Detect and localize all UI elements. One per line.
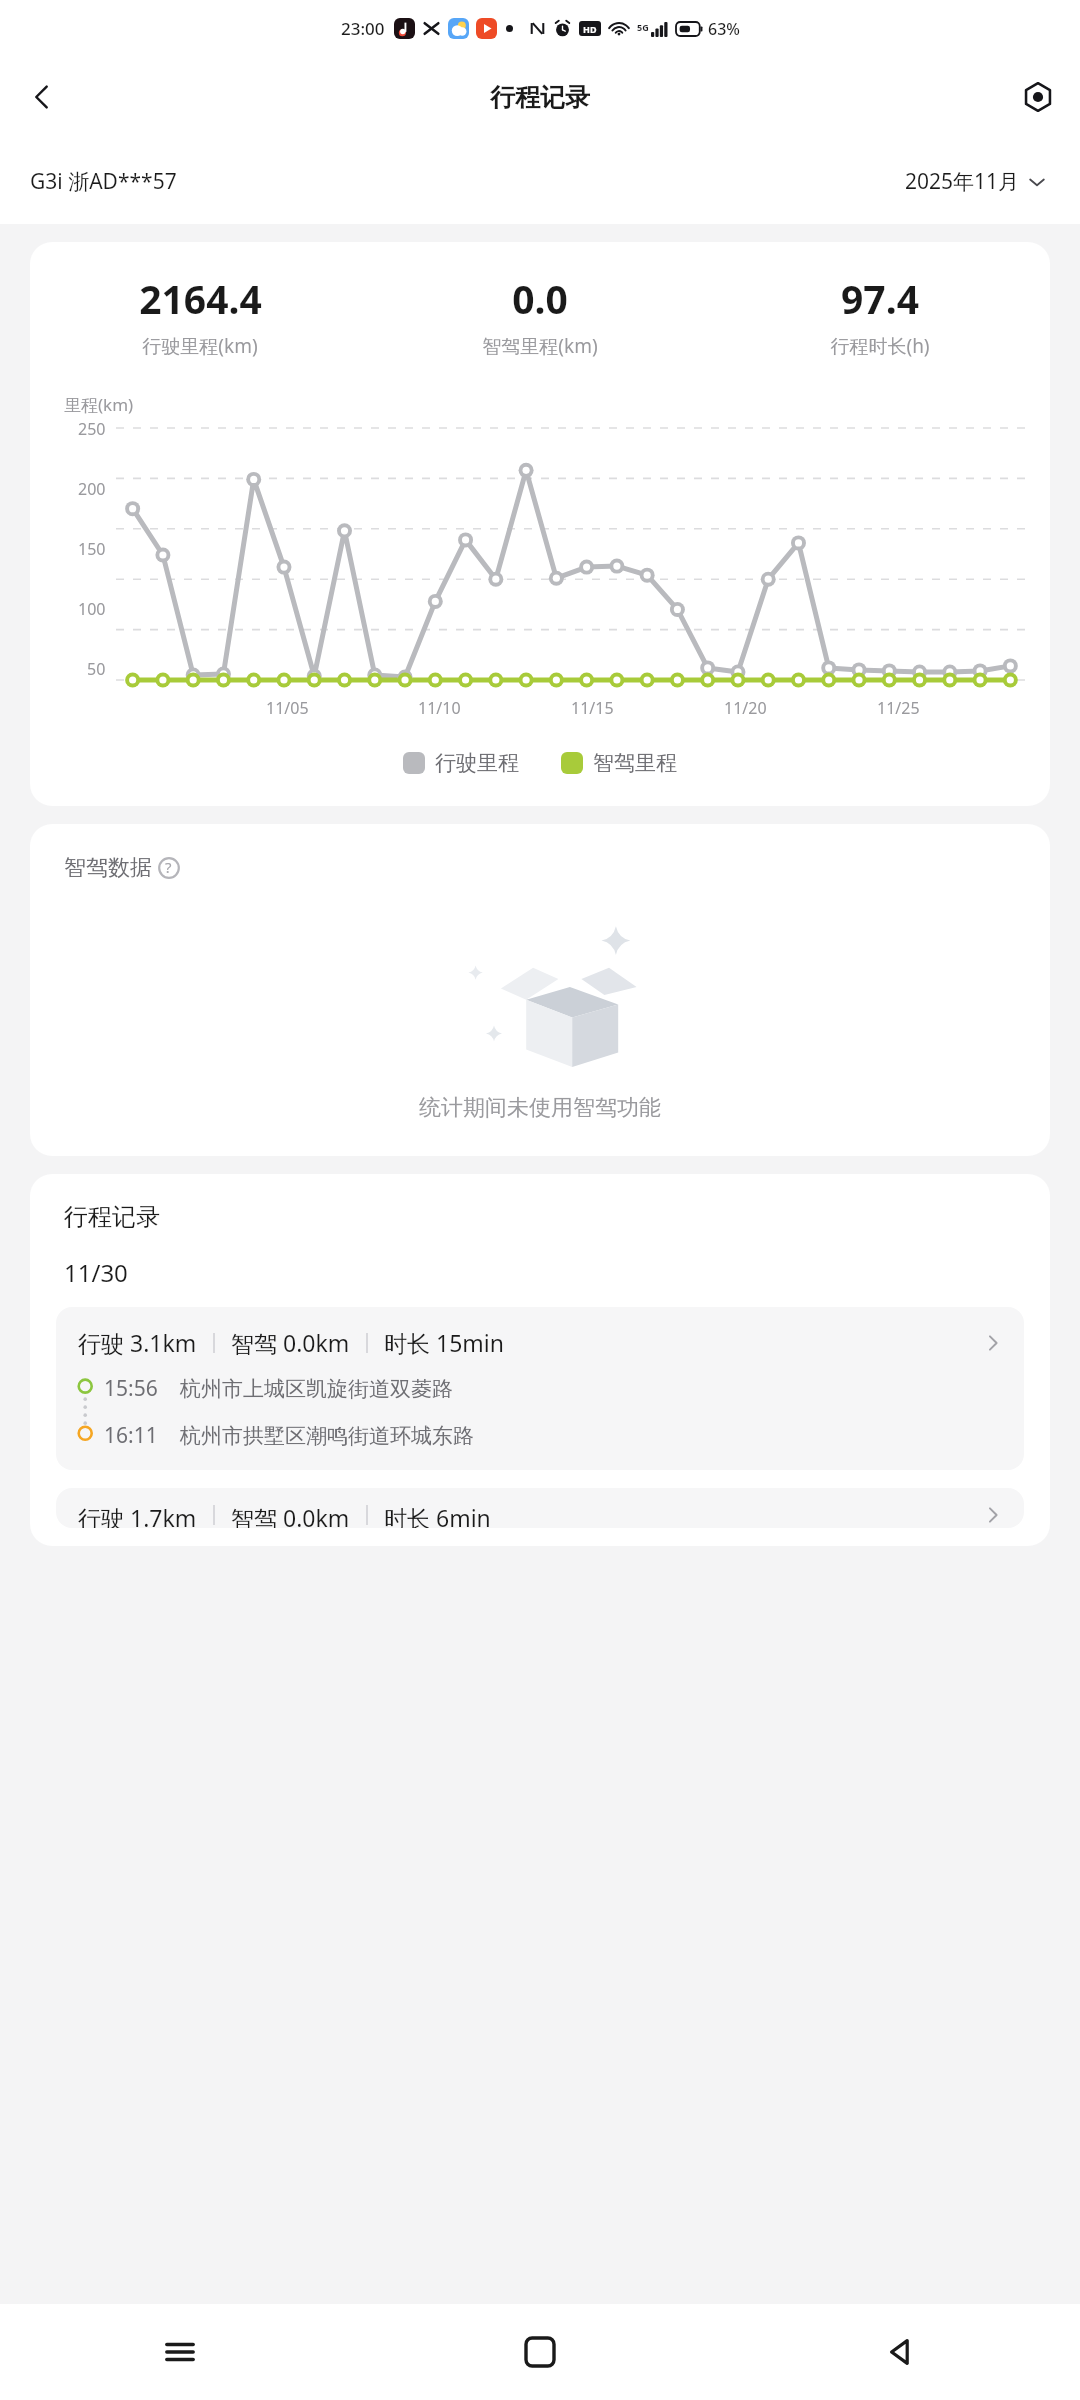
staticText: 2025年11月 <box>905 167 1020 196</box>
staticText: 智驾 0.0km <box>231 1502 350 1528</box>
staticText: 时长 15min <box>384 1327 504 1358</box>
staticText: 11/30 <box>64 1256 128 1289</box>
staticText: 11/20 <box>724 697 767 719</box>
staticText: 杭州市拱墅区潮鸣街道环城东路 <box>180 1423 474 1449</box>
button[interactable]: Settings <box>1012 71 1064 123</box>
staticText: 智驾 0.0km <box>231 1327 350 1358</box>
staticText: 行驶里程(km) <box>142 333 258 359</box>
staticText: 11/05 <box>266 697 309 719</box>
staticText: 智驾数据 <box>64 854 152 882</box>
staticText: 里程(km) <box>64 393 134 416</box>
staticText: 统计期间未使用智驾功能 <box>30 1094 1050 1122</box>
staticText: 行程记录 <box>64 1202 160 1232</box>
staticText: 11/10 <box>418 697 461 719</box>
button[interactable]: Back <box>720 2304 1080 2400</box>
staticText: 行程记录 <box>490 82 590 113</box>
staticText: 11/25 <box>877 697 920 719</box>
staticText: 0.0 <box>512 272 568 325</box>
staticText: 11/15 <box>571 697 614 719</box>
staticText: 250 <box>78 418 106 440</box>
staticText: 智驾里程 <box>593 750 677 776</box>
staticText: 2164.4 <box>139 272 262 325</box>
staticText: 行驶 3.1km <box>78 1327 197 1358</box>
button[interactable]: 智驾里程 <box>557 746 681 780</box>
staticText: 50 <box>87 658 106 680</box>
staticText: 智驾里程(km) <box>482 333 598 359</box>
staticText: 行程时长(h) <box>830 333 930 359</box>
staticText: 97.4 <box>841 272 919 325</box>
staticText: 63% <box>708 18 740 40</box>
staticText: 100 <box>78 598 106 620</box>
button[interactable]: Back <box>14 69 70 125</box>
button[interactable]: 智驾数据 <box>64 852 187 884</box>
button[interactable]: 2025年11月 <box>901 161 1050 202</box>
staticText: 23:00 <box>341 17 385 40</box>
staticText: 行驶里程 <box>435 750 519 776</box>
staticText: 杭州市上城区凯旋街道双菱路 <box>180 1376 453 1402</box>
staticText: 15:56 <box>104 1374 158 1403</box>
staticText: 16:11 <box>104 1421 158 1450</box>
staticText: ? <box>165 857 172 877</box>
button[interactable]: Recents <box>0 2304 360 2400</box>
staticText: 150 <box>78 538 106 560</box>
button[interactable]: 行驶里程 <box>399 746 523 780</box>
staticText: 5G <box>637 21 649 33</box>
staticText: 时长 6min <box>384 1502 491 1528</box>
staticText: HD <box>583 23 597 35</box>
staticText: 行驶 1.7km <box>78 1502 197 1528</box>
staticText: 200 <box>78 478 106 500</box>
button[interactable]: 行驶 1.7km <box>56 1488 1024 1528</box>
button[interactable]: Home <box>360 2304 720 2400</box>
button[interactable]: 行驶 3.1km <box>56 1307 1024 1470</box>
staticText: G3i 浙AD***57 <box>30 167 177 196</box>
